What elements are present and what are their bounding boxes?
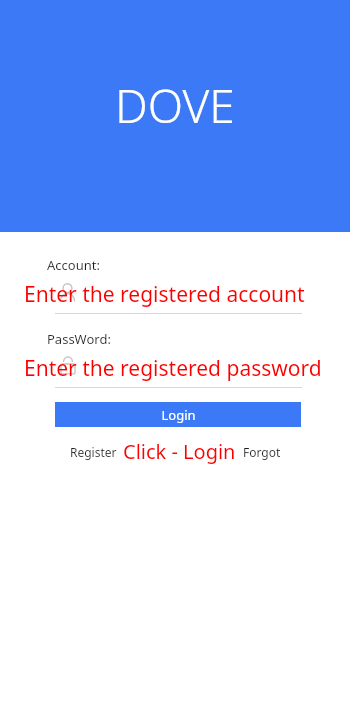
staticText: Enter the registered password — [24, 354, 322, 383]
button[interactable]: Register — [68, 441, 119, 463]
staticText: Enter the registered account — [24, 280, 305, 309]
staticText: DOVE — [115, 74, 235, 137]
staticText: Account: — [47, 256, 100, 274]
other: Password — [60, 356, 76, 375]
button[interactable]: Click - Login — [122, 438, 237, 465]
staticText: Click - Login — [123, 438, 236, 465]
staticText: Register — [70, 444, 117, 460]
button[interactable]: Password — [0, 354, 350, 388]
staticText: PassWord: — [47, 330, 111, 348]
other: Account — [59, 283, 76, 302]
staticText: Forgot — [243, 444, 281, 460]
staticText: Login — [161, 406, 196, 424]
button[interactable]: Account — [0, 280, 350, 314]
button[interactable]: Forgot — [241, 441, 283, 463]
button[interactable]: Login — [55, 402, 301, 427]
